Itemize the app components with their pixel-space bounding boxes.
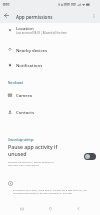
- staticText: App permissions: [16, 14, 53, 20]
- staticText: To protect your data, if the app is unus…: [13, 188, 87, 195]
- button[interactable]: Contacts: [0, 104, 100, 120]
- button[interactable]: Pause app activity if unused toggle: [84, 153, 96, 160]
- staticText: Remove permissions, delete temporary fil…: [8, 160, 55, 166]
- button[interactable]: Location: [0, 23, 100, 36]
- button[interactable]: Home: [44, 202, 57, 215]
- button[interactable]: More options: [87, 9, 100, 22]
- staticText: Unused app settings: [8, 138, 34, 142]
- staticText: Nearby devices: [16, 47, 48, 53]
- button[interactable]: Back: [72, 202, 85, 215]
- staticText: Contacts: [16, 109, 34, 115]
- button[interactable]: Pause app activity if unused: [0, 142, 100, 170]
- button[interactable]: Notifications: [0, 57, 100, 73]
- staticText: Location: [16, 25, 34, 31]
- button[interactable]: Nearby devices: [0, 42, 100, 58]
- staticText: Last accessed 08:03 | Allowed all the ti…: [16, 31, 67, 35]
- staticText: Pause app activity if unused: [8, 143, 60, 158]
- staticText: Not allowed: [8, 81, 23, 85]
- button[interactable]: Navigate up: [0, 9, 13, 22]
- button[interactable]: Recent apps: [15, 202, 28, 215]
- button[interactable]: Camera: [0, 87, 100, 103]
- staticText: Notifications: [16, 62, 43, 68]
- staticText: Camera: [16, 92, 32, 98]
